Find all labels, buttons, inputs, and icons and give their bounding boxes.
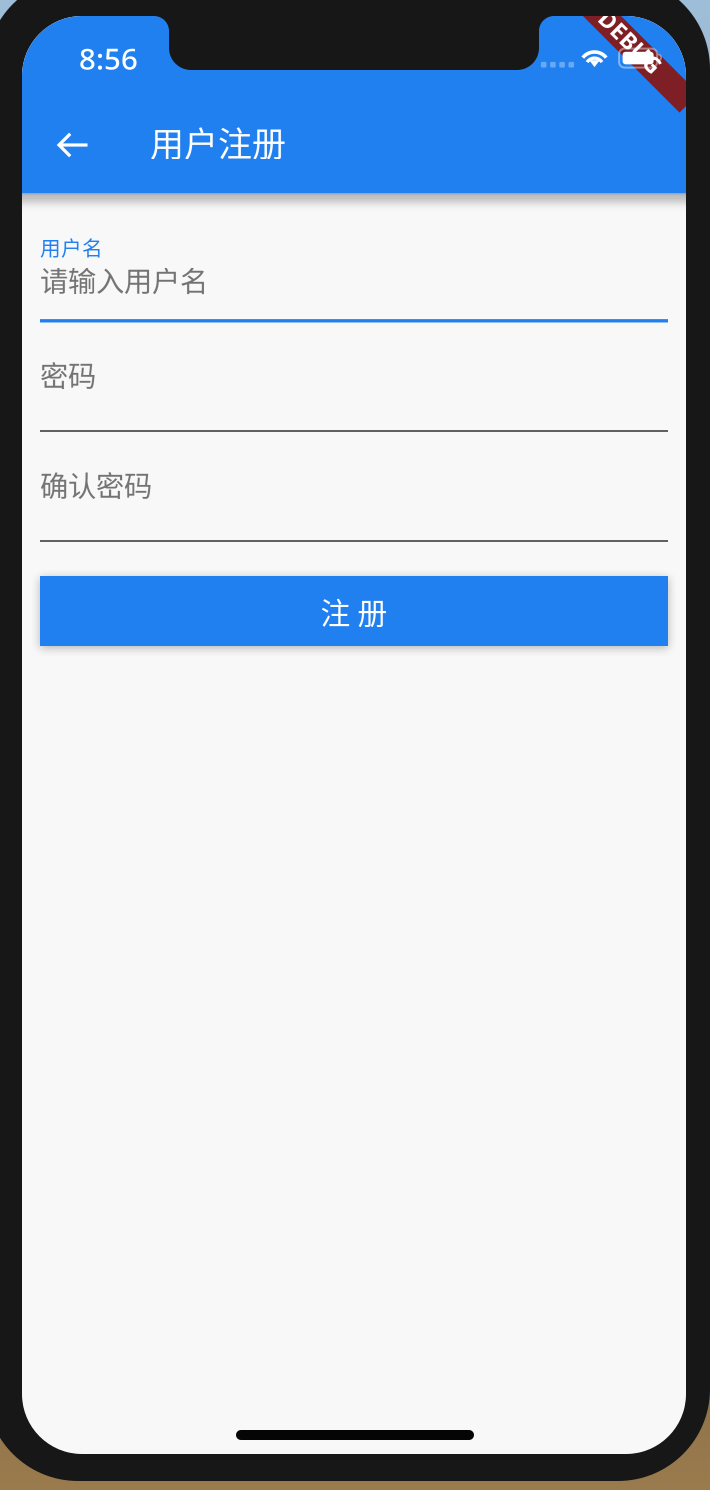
staticText: 确认密码	[40, 464, 152, 505]
staticText: 用户名	[40, 232, 103, 262]
staticText: 8:56	[79, 39, 138, 78]
staticText: 请输入用户名	[40, 259, 208, 300]
button[interactable]: 注 册	[40, 576, 668, 646]
staticText: 注 册	[320, 589, 387, 633]
staticText: 用户注册	[150, 117, 286, 166]
staticText: 密码	[40, 354, 96, 395]
staticText: DEBUG	[609, 0, 687, 10]
button[interactable]: Back	[41, 113, 105, 177]
